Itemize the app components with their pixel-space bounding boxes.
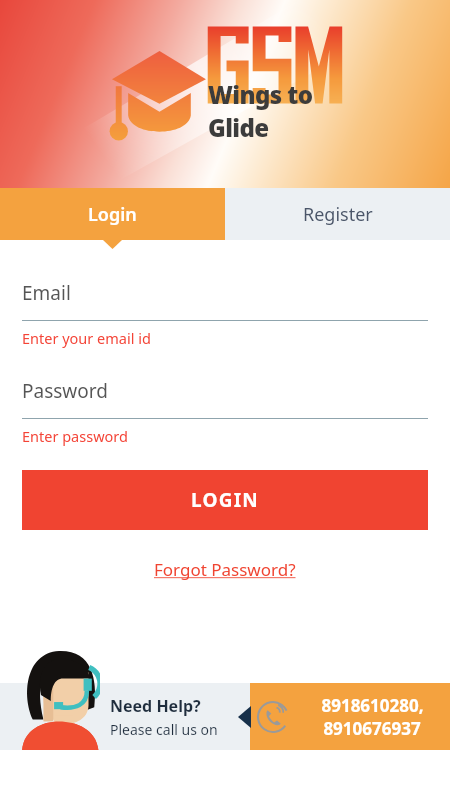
other: Call support (256, 700, 290, 734)
staticText: Enter your email id (22, 328, 151, 348)
staticText: Login (88, 202, 137, 227)
staticText: Register (303, 202, 373, 227)
button[interactable]: Call support (250, 683, 450, 750)
button[interactable]: LOGIN (22, 470, 428, 530)
staticText: Email (22, 280, 71, 306)
staticText: Forgot Password? (154, 558, 296, 581)
staticText: Please call us on (110, 720, 218, 739)
staticText: Enter password (22, 426, 128, 446)
button[interactable]: Password (22, 378, 428, 446)
button[interactable]: Need Help? (0, 683, 250, 750)
staticText: 8918610280, (321, 694, 424, 717)
staticText: LOGIN (191, 487, 259, 513)
staticText: Wings to Glide (208, 78, 354, 144)
button[interactable]: Email (22, 280, 428, 348)
staticText: Need Help? (110, 695, 201, 717)
staticText: Password (22, 378, 108, 404)
button[interactable]: Forgot Password? (154, 558, 296, 581)
staticText: 8910676937 (323, 717, 421, 740)
button[interactable]: Register (225, 188, 450, 240)
button[interactable]: Login (0, 188, 225, 240)
